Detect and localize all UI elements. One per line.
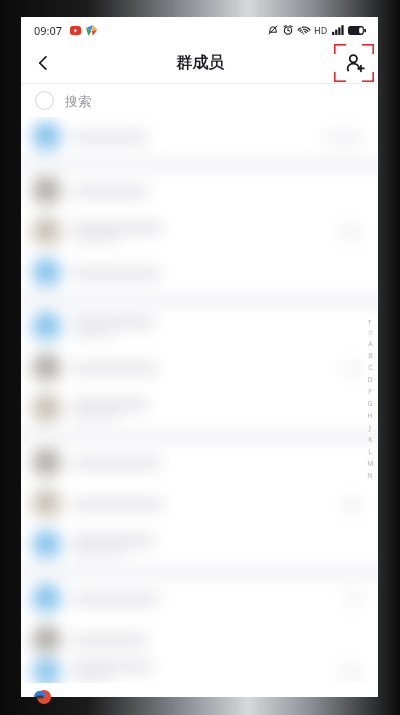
button[interactable] xyxy=(21,348,378,389)
button[interactable] xyxy=(21,443,378,484)
staticText: 09:07 xyxy=(34,23,63,38)
staticText: C xyxy=(368,363,373,373)
staticText: J xyxy=(369,423,371,433)
staticText: ↑ xyxy=(367,319,373,327)
button[interactable]: 搜索 xyxy=(21,84,378,117)
staticText: D xyxy=(367,375,373,385)
staticText: HD xyxy=(314,24,328,36)
staticText: A xyxy=(368,339,373,349)
staticText: B xyxy=(368,351,373,361)
button[interactable] xyxy=(21,661,378,683)
staticText: F xyxy=(368,387,372,397)
button[interactable] xyxy=(21,484,378,525)
button[interactable] xyxy=(21,620,378,661)
staticText: ☆ xyxy=(367,329,374,337)
button[interactable]: Back xyxy=(21,43,65,83)
button[interactable] xyxy=(21,389,378,430)
button[interactable] xyxy=(21,253,378,294)
button[interactable]: Alphabet index xyxy=(364,318,376,482)
button[interactable]: Floating assistant xyxy=(33,690,55,704)
button[interactable] xyxy=(21,212,378,253)
button[interactable] xyxy=(21,307,378,348)
staticText: L xyxy=(368,447,372,457)
staticText: M xyxy=(367,459,374,469)
staticText: G xyxy=(367,399,373,409)
staticText: N xyxy=(367,471,373,481)
button[interactable] xyxy=(21,525,378,566)
button[interactable] xyxy=(21,117,378,158)
button[interactable] xyxy=(21,171,378,212)
button[interactable]: Add member xyxy=(334,44,374,82)
staticText: 搜索 xyxy=(65,93,91,109)
staticText: K xyxy=(368,435,373,445)
button[interactable] xyxy=(21,579,378,620)
staticText: H xyxy=(367,411,373,421)
staticText: 群成员 xyxy=(176,53,224,73)
